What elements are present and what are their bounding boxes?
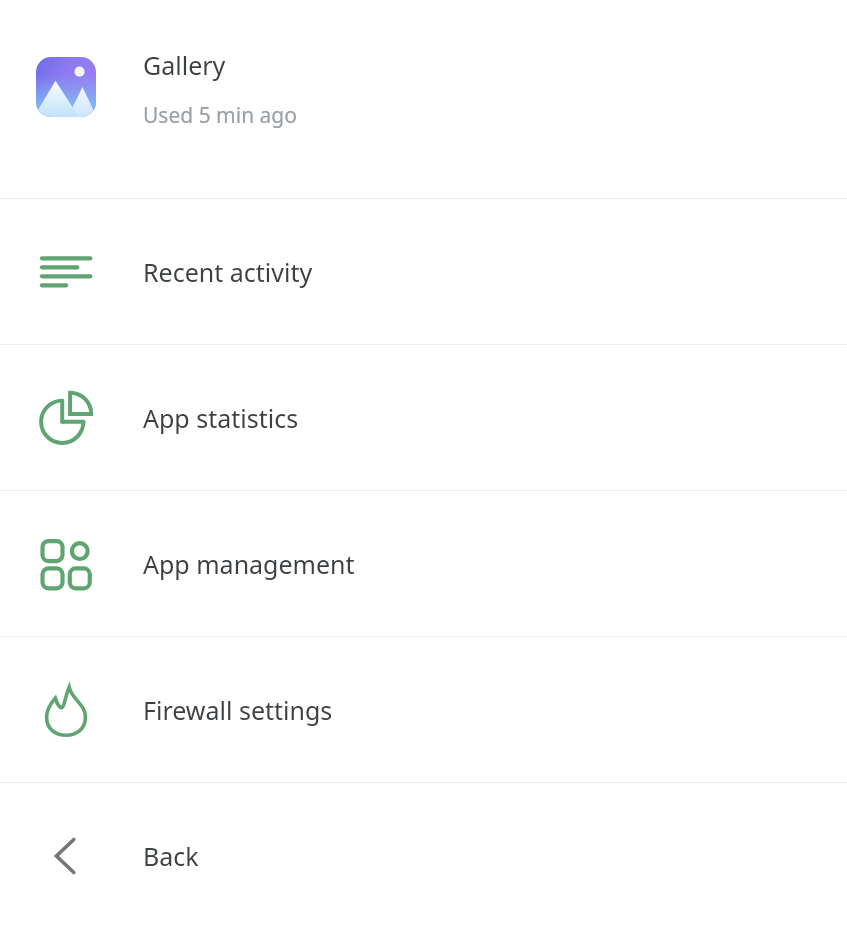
- button[interactable]: Gallery: [0, 0, 847, 198]
- button[interactable]: App statistics: [0, 345, 847, 490]
- staticText: Firewall settings: [143, 693, 333, 727]
- button[interactable]: Recent activity: [0, 199, 847, 344]
- staticText: Recent activity: [143, 255, 313, 289]
- staticText: Used 5 min ago: [143, 101, 297, 130]
- button[interactable]: Firewall settings: [0, 637, 847, 782]
- button[interactable]: Back: [0, 783, 847, 928]
- staticText: App management: [143, 547, 355, 581]
- button[interactable]: App management: [0, 491, 847, 636]
- staticText: Back: [143, 839, 199, 873]
- staticText: Gallery: [143, 48, 226, 82]
- staticText: App statistics: [143, 401, 299, 435]
- other: Back: [37, 827, 95, 885]
